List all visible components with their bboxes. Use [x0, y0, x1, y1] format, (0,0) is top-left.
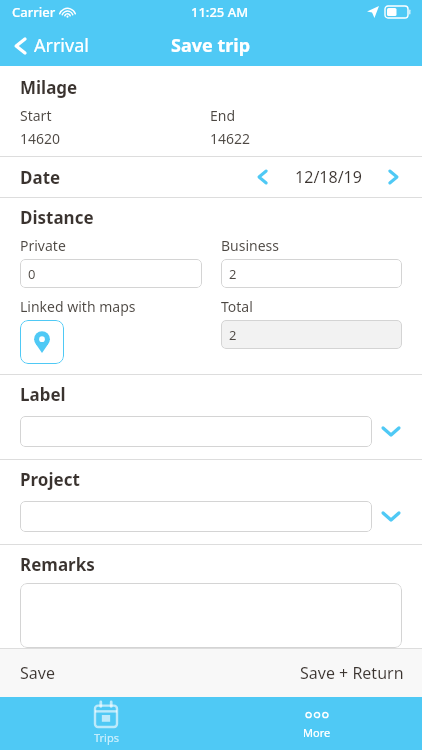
- staticText: Milage: [20, 76, 78, 99]
- button[interactable]: 2: [221, 259, 402, 288]
- staticText: Distance: [20, 206, 94, 229]
- staticText: 14620: [20, 129, 61, 148]
- staticText: Date: [20, 166, 61, 189]
- staticText: 0: [28, 265, 36, 283]
- staticText: Linked with maps: [20, 297, 136, 316]
- staticText: 14622: [210, 129, 251, 148]
- button[interactable]: Trips: [0, 697, 211, 750]
- button[interactable]: Previous date: [248, 162, 278, 192]
- staticText: Business: [221, 236, 280, 255]
- staticText: Save + Return: [300, 662, 404, 684]
- button[interactable]: Choose Label: [372, 412, 410, 450]
- button[interactable]: Save: [20, 648, 55, 697]
- button[interactable]: Arrival: [10, 33, 89, 58]
- button[interactable]: Project: [20, 501, 372, 532]
- staticText: 12/18/19: [295, 166, 362, 188]
- button[interactable]: Save + Return: [300, 648, 404, 697]
- button[interactable]: Choose Project: [372, 497, 410, 535]
- staticText: Remarks: [20, 553, 95, 576]
- staticText: End: [210, 106, 236, 125]
- staticText: More: [303, 725, 331, 740]
- staticText: Carrier: [12, 3, 56, 21]
- staticText: Project: [20, 468, 80, 491]
- staticText: 2: [229, 326, 237, 344]
- staticText: Save trip: [171, 33, 251, 58]
- staticText: Save: [20, 662, 55, 684]
- button[interactable]: Remarks: [20, 583, 402, 648]
- button[interactable]: 0: [20, 259, 202, 288]
- staticText: Label: [20, 383, 66, 406]
- staticText: Arrival: [34, 33, 89, 58]
- staticText: Trips: [94, 730, 119, 745]
- button[interactable]: Next date: [378, 162, 408, 192]
- button[interactable]: More: [211, 697, 422, 750]
- staticText: 2: [229, 265, 237, 283]
- staticText: Total: [221, 297, 253, 316]
- staticText: Private: [20, 236, 66, 255]
- staticText: Start: [20, 106, 52, 125]
- button[interactable]: 2: [221, 320, 402, 349]
- staticText: 11:25 AM: [191, 3, 249, 21]
- button[interactable]: Linked with maps: [20, 320, 64, 364]
- button[interactable]: Label: [20, 416, 372, 447]
